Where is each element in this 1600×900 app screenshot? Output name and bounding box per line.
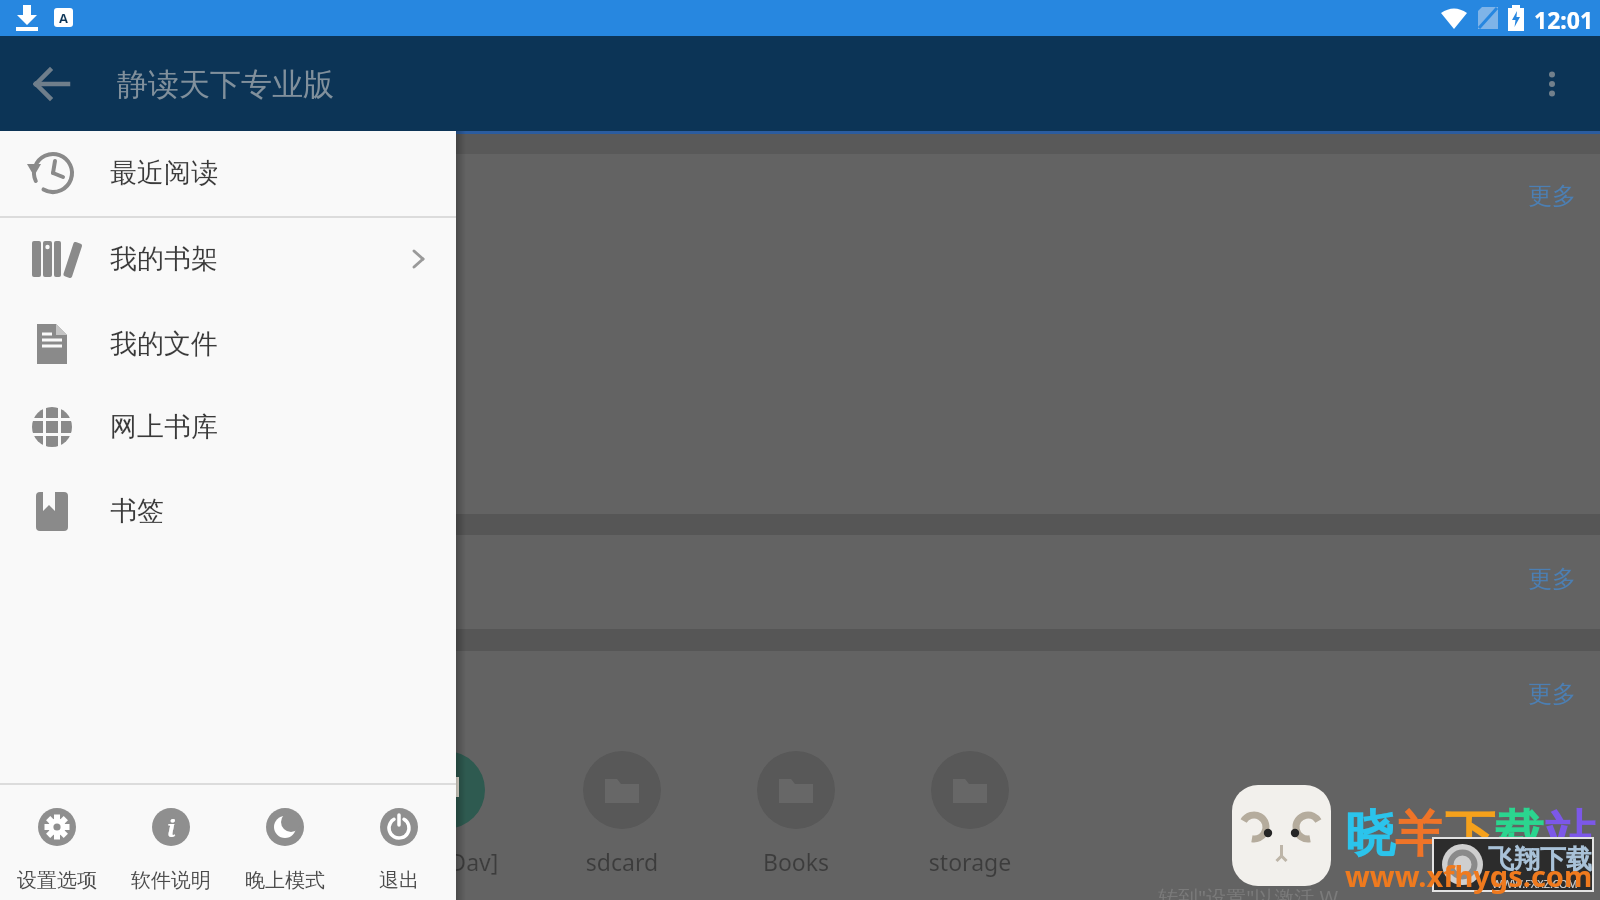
button[interactable]: 更多 [1528, 181, 1576, 211]
staticText: i [167, 811, 176, 844]
button[interactable]: i [114, 808, 228, 900]
staticText: 站 [1545, 803, 1595, 866]
button[interactable]: 更多 [1528, 679, 1576, 709]
staticText: 转到"设置"以激活 W [1158, 884, 1339, 900]
button[interactable]: 网上书库 [0, 385, 456, 469]
staticText: 退出 [379, 868, 419, 893]
staticText: 软件说明 [131, 868, 211, 893]
staticText: 网上书库 [110, 410, 218, 444]
button[interactable] [1528, 60, 1576, 108]
staticText: 12:01 [1534, 4, 1594, 35]
staticText: sdcard [562, 846, 682, 877]
staticText: 更多 [1528, 564, 1576, 594]
staticText: 最近阅读 [110, 156, 218, 190]
staticText: 我的书架 [110, 242, 218, 276]
button[interactable]: 书签 [0, 469, 456, 553]
staticText: Books [736, 846, 856, 877]
staticText: 飞翔下载 [1488, 843, 1592, 876]
staticText: 下 [1445, 803, 1495, 866]
button[interactable] [583, 751, 661, 829]
button[interactable] [757, 751, 835, 829]
button[interactable]: 最近阅读 [0, 131, 456, 215]
staticText: 静读天下专业版 [117, 65, 334, 104]
staticText: A [59, 9, 68, 27]
staticText: 更多 [1528, 181, 1576, 211]
button[interactable] [30, 62, 74, 106]
button[interactable]: 我的书架 [0, 217, 456, 301]
staticText: 晚上模式 [245, 868, 325, 893]
button[interactable] [407, 751, 485, 829]
button[interactable]: 晚上模式 [228, 808, 342, 900]
staticText: storage [910, 846, 1030, 877]
button[interactable]: 更多 [1528, 564, 1576, 594]
staticText: 设置选项 [17, 868, 97, 893]
staticText: 我的文件 [110, 327, 218, 361]
button[interactable]: 我的文件 [0, 302, 456, 386]
staticText: 晓 [1345, 803, 1395, 866]
button[interactable] [931, 751, 1009, 829]
staticText: WWW.FXXZ.COM [1492, 876, 1578, 891]
staticText: [WebDav] [386, 846, 506, 877]
staticText: www.xfhygs.com [1345, 856, 1593, 895]
button[interactable]: 设置选项 [0, 808, 114, 900]
button[interactable]: 退出 [342, 808, 456, 900]
staticText: 载 [1495, 803, 1545, 866]
staticText: 更多 [1528, 679, 1576, 709]
staticText: 书签 [110, 494, 164, 528]
staticText: 羊 [1395, 803, 1445, 866]
